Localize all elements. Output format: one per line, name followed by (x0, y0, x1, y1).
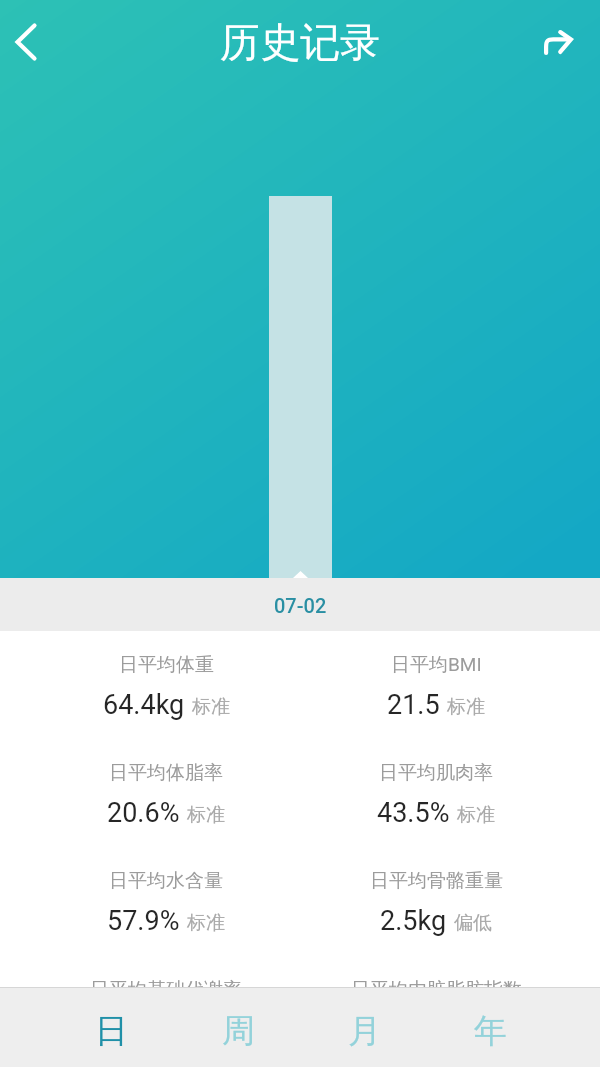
staticText: 历史记录 (220, 17, 380, 67)
staticText: 2.5kg (380, 905, 447, 937)
staticText: 20.6% (107, 797, 180, 829)
staticText: 周 (222, 1010, 255, 1052)
staticText: 21.5 (387, 689, 440, 721)
button[interactable]: Back (0, 0, 51, 84)
staticText: 日平均基础代谢率 (90, 978, 242, 1002)
staticText: 日平均BMI (391, 653, 482, 677)
staticText: 43.5% (377, 797, 450, 829)
staticText: 标准 (440, 1020, 478, 1044)
staticText: 日平均内脏脂肪指数 (351, 978, 522, 1002)
button[interactable]: Share (533, 0, 584, 84)
staticText: 57.9% (107, 905, 180, 937)
staticText: 日平均骨骼重量 (370, 869, 503, 893)
button[interactable]: 周 (175, 987, 301, 1067)
staticText: 标准 (457, 803, 495, 827)
staticText: 年 (474, 1010, 507, 1052)
staticText: 标准 (187, 911, 225, 935)
button[interactable]: 月 (301, 987, 427, 1067)
staticText: 日平均水含量 (109, 869, 223, 893)
staticText: 偏低 (454, 911, 492, 935)
staticText: 64.4kg (103, 689, 185, 721)
button[interactable]: 日 (48, 987, 175, 1067)
button[interactable]: 年 (427, 987, 553, 1067)
staticText: 标准 (447, 695, 485, 719)
staticText: 07-02 (274, 594, 327, 617)
staticText: 日平均体重 (119, 653, 214, 677)
staticText: 日 (95, 1010, 128, 1052)
staticText: 1320 (115, 1014, 176, 1046)
staticText: 日平均体脂率 (109, 761, 223, 785)
staticText: 标准 (187, 803, 225, 827)
staticText: 月 (348, 1010, 381, 1052)
staticText: 标准 (192, 695, 230, 719)
staticText: 日平均肌肉率 (379, 761, 493, 785)
